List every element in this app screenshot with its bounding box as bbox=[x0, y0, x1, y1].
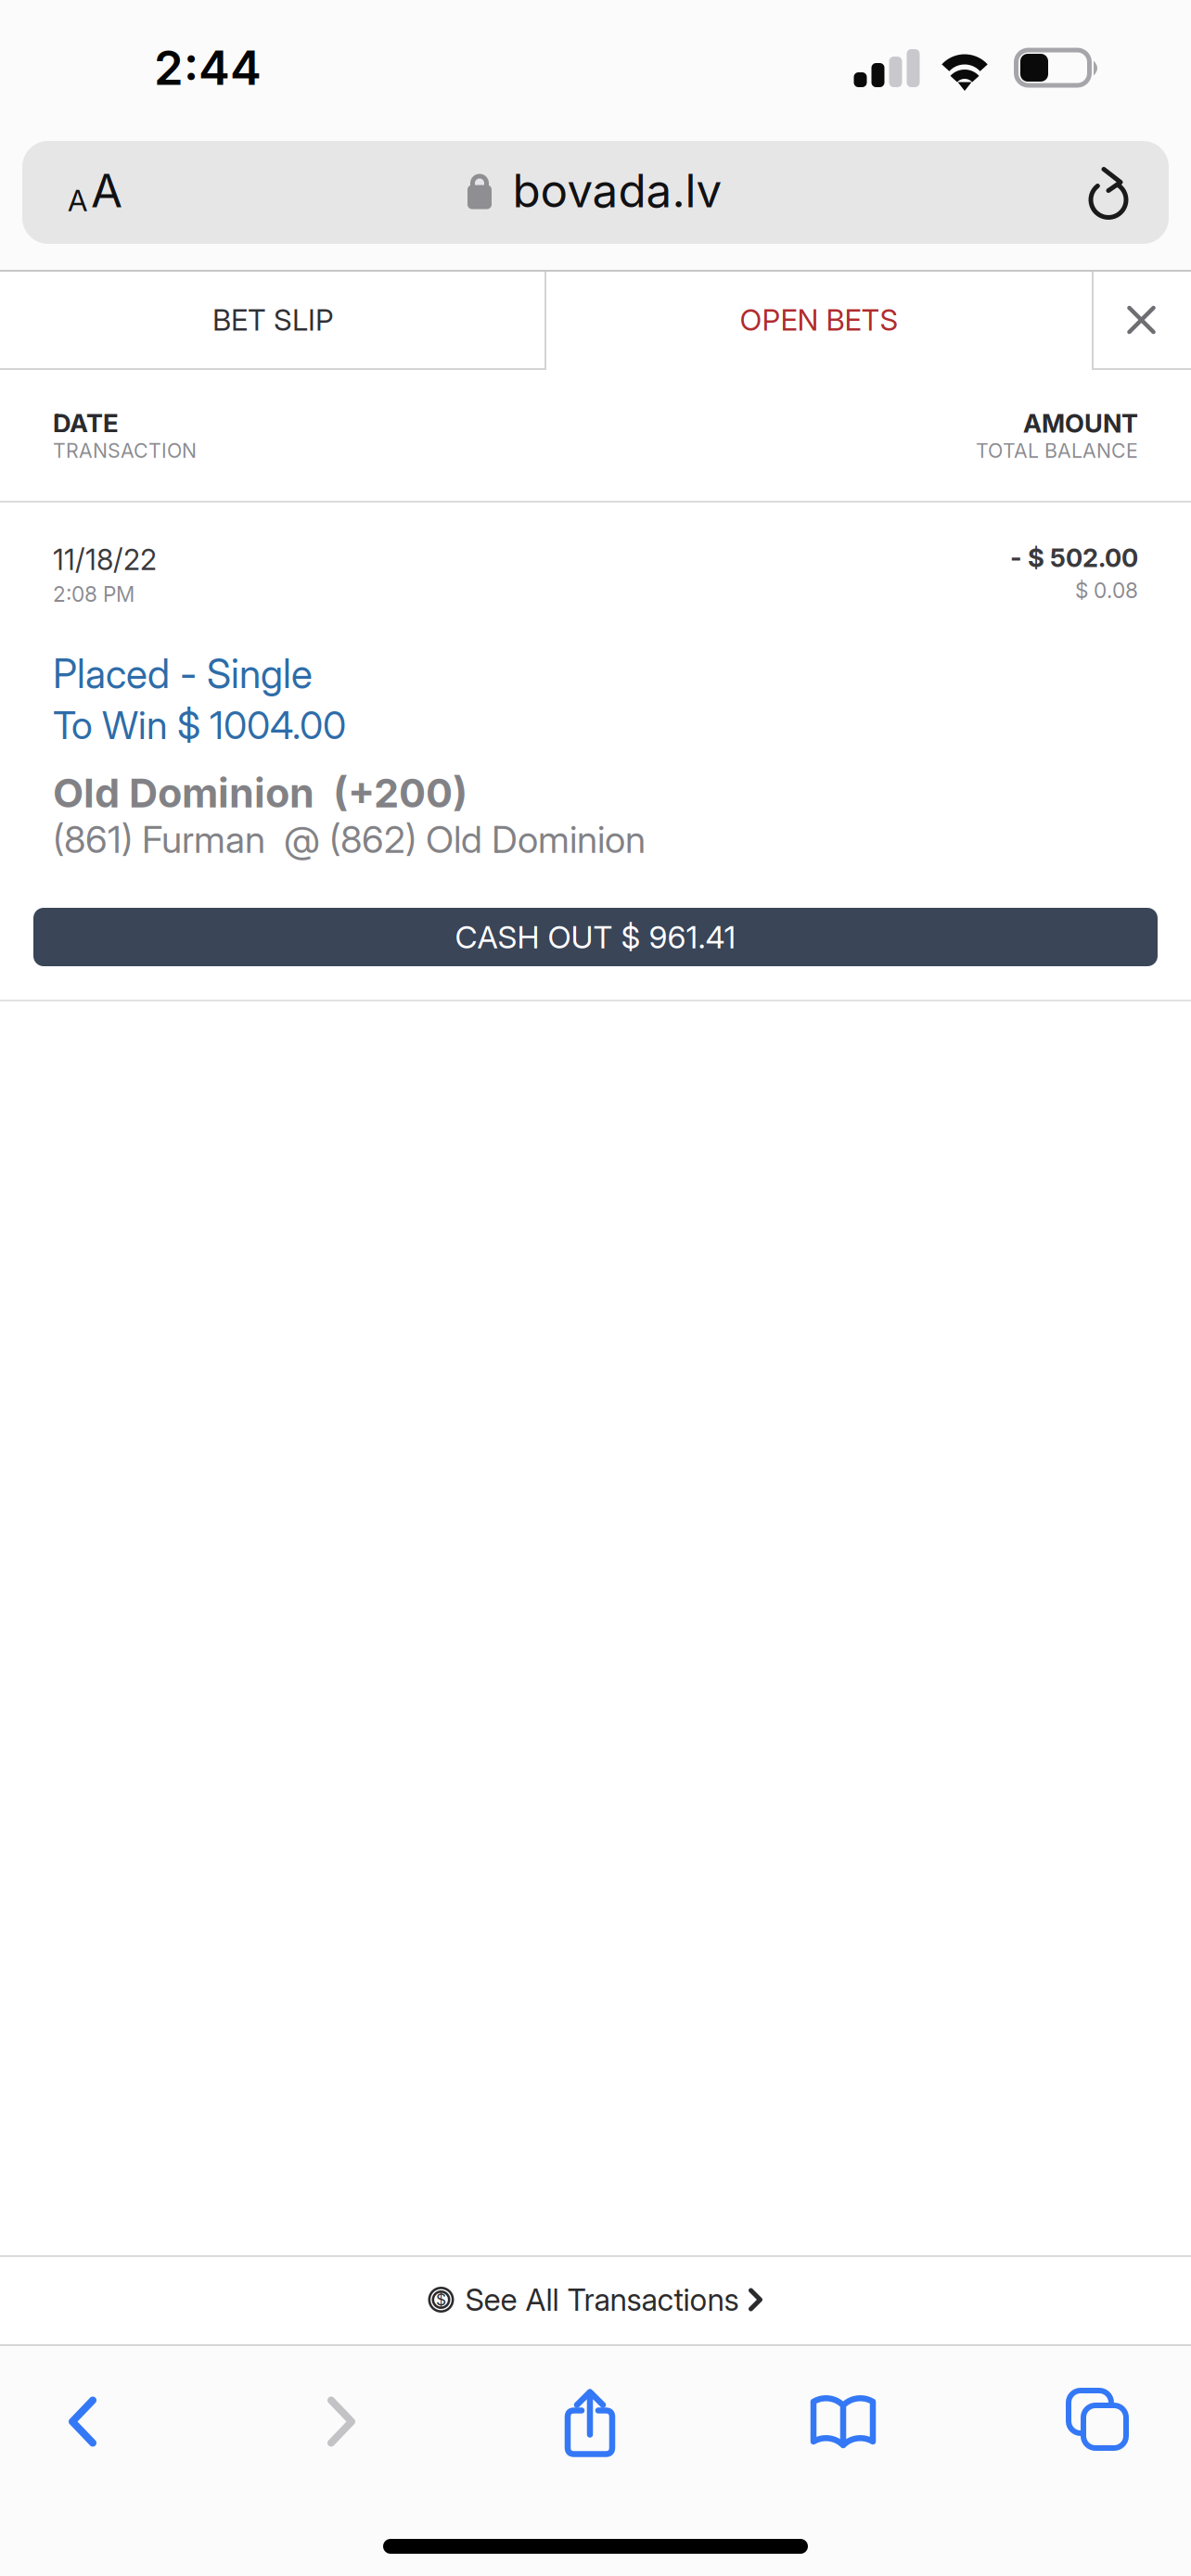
staticText: 2:08 PM bbox=[53, 582, 134, 607]
staticText: OPEN BETS bbox=[740, 302, 898, 337]
button[interactable]: BET SLIP bbox=[0, 270, 546, 370]
staticText: To Win $ 1004.00 bbox=[53, 702, 346, 748]
staticText: AMOUNT bbox=[1023, 408, 1138, 439]
button[interactable]: Page settings bbox=[22, 141, 168, 244]
staticText: A bbox=[91, 163, 122, 218]
staticText: A bbox=[68, 182, 87, 218]
button[interactable]: Share bbox=[563, 2386, 617, 2458]
staticText: - $ 502.00 bbox=[1010, 542, 1138, 573]
staticText: CASH OUT $ 961.41 bbox=[455, 918, 736, 956]
button[interactable]: Forward bbox=[326, 2396, 357, 2448]
button[interactable]: Close bet slip bbox=[1092, 270, 1191, 370]
button[interactable]: Bookmarks bbox=[809, 2393, 877, 2451]
staticText: 11/18/22 bbox=[53, 542, 157, 577]
staticText: (861) Furman @ (862) Old Dominion bbox=[53, 817, 646, 862]
staticText: $ 0.08 bbox=[1075, 578, 1138, 603]
staticText: 2:44 bbox=[154, 39, 262, 96]
button[interactable]: $ bbox=[0, 2255, 1191, 2344]
button[interactable]: OPEN BETS bbox=[546, 270, 1092, 370]
staticText: TOTAL BALANCE bbox=[976, 439, 1138, 463]
button[interactable]: Reload bbox=[1020, 141, 1169, 244]
button[interactable]: CASH OUT $ 961.41 bbox=[33, 908, 1158, 966]
staticText: bovada.lv bbox=[512, 163, 722, 218]
button[interactable]: Tabs bbox=[1066, 2391, 1129, 2454]
staticText: TRANSACTION bbox=[53, 439, 197, 463]
staticText: Old Dominion (+200) bbox=[53, 769, 467, 817]
staticText: See All Transactions bbox=[465, 2281, 739, 2318]
staticText: Placed - Single bbox=[53, 650, 313, 698]
staticText: $ bbox=[436, 2290, 446, 2309]
staticText: DATE bbox=[53, 408, 119, 439]
button[interactable]: Back bbox=[67, 2396, 98, 2448]
staticText: BET SLIP bbox=[212, 302, 334, 337]
